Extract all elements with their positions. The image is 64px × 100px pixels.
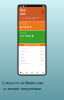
button[interactable]: Tab 1 — [18, 70, 24, 75]
staticText: Продукты — [20, 47, 28, 49]
button[interactable]: Связь — [18, 56, 46, 59]
staticText: Расходы — [20, 23, 27, 25]
staticText: и всеми затратами — [3, 86, 41, 91]
staticText: 9:41 — [19, 4, 26, 8]
button[interactable]: Profile — [41, 11, 44, 14]
staticText: 18 900 ₽ — [20, 34, 34, 38]
button[interactable]: Кафе — [18, 53, 46, 56]
button[interactable]: Расходы — [18, 22, 46, 30]
button[interactable]: Транспорт — [18, 50, 46, 53]
staticText: 1 100 ₽ — [39, 60, 44, 62]
staticText: 12 450,00 ₽ — [20, 16, 39, 20]
staticText: Одежда — [20, 60, 26, 62]
button[interactable]: Tab 4 — [35, 70, 40, 75]
staticText: Следите за балансом — [2, 80, 43, 85]
staticText: 2 400 ₽ — [39, 63, 44, 65]
staticText: Кафе — [20, 54, 24, 55]
button[interactable]: Tab 5 — [40, 70, 46, 75]
staticText: 480 ₽ — [40, 50, 44, 52]
button[interactable]: Доходы — [18, 30, 46, 43]
button[interactable]: Добавить операцию — [18, 43, 46, 46]
button[interactable]: Tab 3 — [29, 70, 35, 75]
staticText: Доходы — [20, 32, 26, 33]
staticText: Развлечения — [20, 62, 29, 66]
button[interactable]: Развлечения — [18, 62, 46, 66]
staticText: Связь — [20, 57, 25, 59]
staticText: 1 250 ₽ — [39, 47, 44, 49]
staticText: 350 ₽ — [40, 57, 44, 59]
staticText: Добавить операцию — [24, 44, 40, 46]
button[interactable]: Продукты — [18, 46, 46, 50]
button[interactable]: Tab 2 — [24, 70, 29, 75]
button[interactable]: Одежда — [18, 59, 46, 62]
staticText: 4 320 ₽ — [20, 25, 32, 29]
staticText: Транспорт — [20, 50, 29, 52]
staticText: Мой счёт — [20, 9, 26, 16]
